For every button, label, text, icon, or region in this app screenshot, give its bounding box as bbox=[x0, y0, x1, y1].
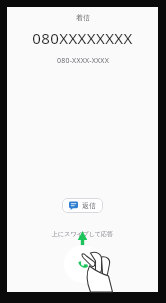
button[interactable]: 応答 bbox=[64, 245, 102, 283]
staticText: 080XXXXXXXX bbox=[32, 28, 133, 48]
button[interactable]: 返信 bbox=[62, 198, 103, 213]
staticText: 返信 bbox=[82, 201, 96, 210]
staticText: 上にスワイプして応答 bbox=[52, 230, 113, 238]
staticText: 080-XXXX-XXXX bbox=[57, 56, 109, 66]
staticText: 着信 bbox=[76, 13, 90, 22]
